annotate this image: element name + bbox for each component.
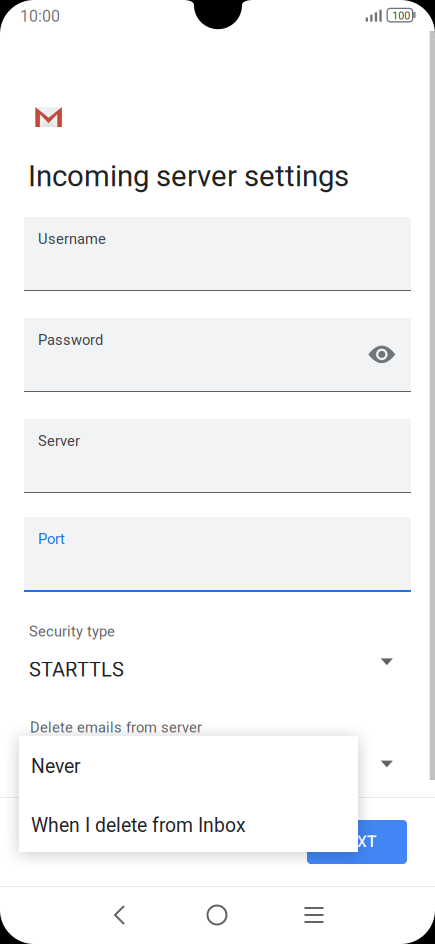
button[interactable]: Password [24,317,411,392]
staticText: Never [31,755,81,778]
staticText: Username [38,230,106,248]
staticText: Server [38,432,80,450]
button[interactable] [29,745,411,785]
button[interactable]: NEXT [307,820,407,864]
staticText: Password [38,331,103,349]
button[interactable]: STARTTLS [29,653,411,693]
staticText: Delete emails from server [30,719,202,736]
button[interactable]: Username [24,216,411,291]
staticText: NEXT [337,833,377,851]
button[interactable]: When I delete from Inbox [19,794,358,852]
staticText: Security type [29,623,115,640]
button[interactable]: Home [194,892,240,938]
staticText: Port [38,530,65,548]
button[interactable]: Back [97,892,143,938]
staticText: STARTTLS [29,658,124,681]
button[interactable]: Recent apps [291,892,337,938]
button[interactable]: Never [19,736,358,794]
staticText: Incoming server settings [28,159,349,193]
button[interactable]: Server [24,418,411,493]
staticText: 100 [392,10,410,22]
staticText: When I delete from Inbox [31,814,246,837]
button[interactable]: Port [24,516,411,591]
staticText: 10:00 [20,7,60,26]
